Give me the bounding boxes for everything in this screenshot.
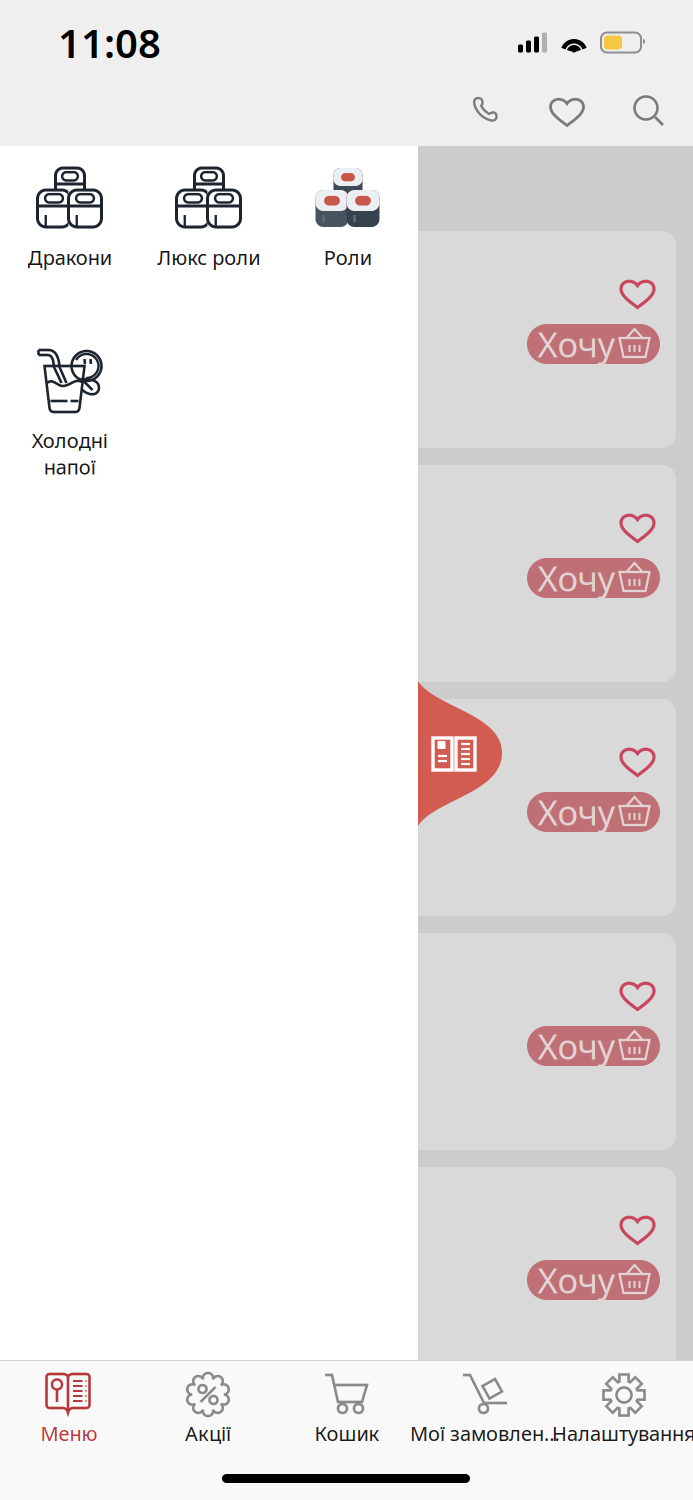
- button[interactable]: Меню: [0, 1360, 138, 1446]
- staticText: Дракони: [27, 244, 111, 271]
- button[interactable]: Кошик: [278, 1360, 416, 1446]
- button[interactable]: Open menu: [418, 681, 502, 826]
- staticText: Хочу: [537, 1023, 615, 1069]
- staticText: Мої замовлен…: [410, 1420, 560, 1447]
- staticText: Холодні напої: [31, 427, 107, 480]
- staticText: Налаштування: [552, 1420, 693, 1447]
- staticText: Акції: [185, 1420, 231, 1447]
- staticText: Кошик: [314, 1420, 379, 1447]
- button[interactable]: Люкс роли: [139, 168, 278, 280]
- staticText: Хочу: [537, 789, 615, 835]
- button[interactable]: Акції: [139, 1360, 277, 1446]
- staticText: Роли: [323, 244, 371, 271]
- button[interactable]: Favorites: [538, 82, 596, 140]
- button[interactable]: Мої замовлен…: [416, 1360, 554, 1446]
- button[interactable]: Холодні напої: [0, 345, 139, 495]
- staticText: Хочу: [537, 555, 615, 601]
- staticText: Люкс роли: [157, 244, 260, 271]
- staticText: 11:08: [58, 16, 161, 69]
- button[interactable]: Call: [456, 82, 514, 140]
- button[interactable]: Дракони: [0, 168, 139, 280]
- staticText: Меню: [40, 1420, 97, 1447]
- button[interactable]: Налаштування: [555, 1360, 693, 1446]
- button[interactable]: Роли: [278, 168, 417, 280]
- staticText: Хочу: [537, 321, 615, 367]
- button[interactable]: Search: [620, 82, 678, 140]
- staticText: Хочу: [537, 1257, 615, 1303]
